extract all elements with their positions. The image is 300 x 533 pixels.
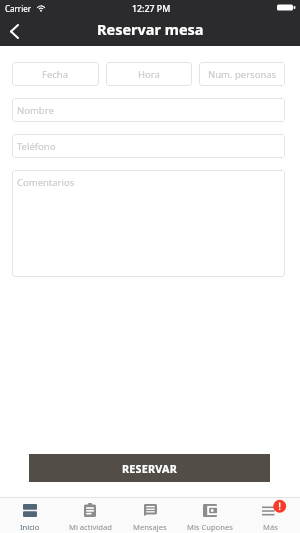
button[interactable]: Nombre: [12, 98, 285, 122]
staticText: Nombre: [17, 104, 54, 117]
button[interactable]: Inicio: [0, 498, 60, 533]
button[interactable]: Num. personas: [199, 62, 285, 86]
staticText: RESERVAR: [122, 461, 177, 476]
button[interactable]: Mensajes: [120, 498, 180, 533]
button[interactable]: RESERVAR: [29, 454, 270, 482]
staticText: Inicio: [20, 522, 40, 532]
staticText: Reservar mesa: [97, 19, 204, 39]
button[interactable]: Fecha: [12, 62, 99, 86]
button[interactable]: Mis Cupones: [180, 498, 240, 533]
staticText: Comentarios: [17, 176, 75, 189]
staticText: Num. personas: [208, 68, 277, 81]
staticText: Mis Cupones: [187, 522, 233, 532]
staticText: Más: [263, 522, 278, 532]
button[interactable]: Comentarios: [12, 170, 285, 277]
button[interactable]: Más: [240, 498, 300, 533]
button[interactable]: Teléfono: [12, 134, 285, 158]
staticText: Mi actividad: [69, 522, 112, 532]
staticText: 12:27 PM: [132, 3, 171, 15]
staticText: Hora: [138, 68, 160, 81]
button[interactable]: Mi actividad: [60, 498, 120, 533]
staticText: Carrier: [5, 3, 32, 14]
button[interactable]: Hora: [106, 62, 192, 86]
staticText: Mensajes: [133, 522, 167, 532]
staticText: Teléfono: [17, 140, 56, 153]
staticText: Fecha: [42, 68, 69, 81]
button[interactable]: Back: [0, 17, 28, 45]
